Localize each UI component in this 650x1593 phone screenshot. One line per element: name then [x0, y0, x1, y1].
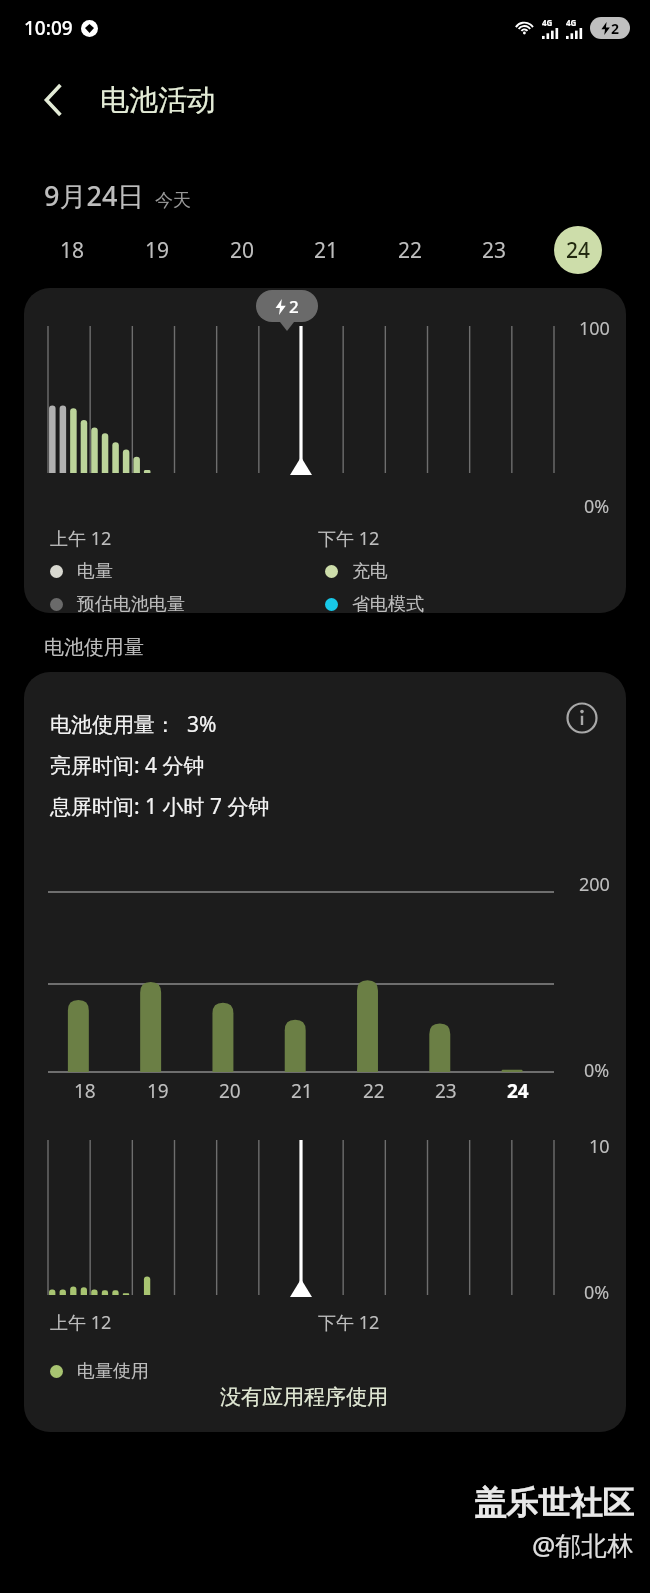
button[interactable]: 24: [536, 222, 620, 278]
staticText: 19: [147, 1078, 169, 1104]
staticText: 2: [611, 19, 620, 38]
staticText: 0%: [584, 1280, 610, 1305]
button[interactable]: 18: [30, 222, 115, 278]
staticText: 0%: [584, 1058, 610, 1083]
staticText: 22: [398, 236, 423, 265]
staticText: 2: [289, 295, 299, 318]
staticText: 电池使用量： 3%: [50, 710, 217, 739]
staticText: 21: [314, 236, 339, 265]
staticText: 4G: [566, 17, 577, 28]
button[interactable]: 19: [115, 222, 200, 278]
staticText: 24: [507, 1078, 529, 1104]
button[interactable]: 20: [200, 222, 284, 278]
button[interactable]: Info: [560, 696, 604, 740]
staticText: 没有应用程序使用: [220, 1384, 388, 1410]
staticText: 今天: [155, 189, 191, 212]
staticText: 充电: [352, 560, 388, 583]
staticText: 上午 12: [50, 1310, 112, 1335]
staticText: 省电模式: [352, 593, 424, 613]
button[interactable]: Back: [30, 76, 78, 124]
staticText: @郁北林: [532, 1527, 634, 1563]
staticText: 22: [363, 1078, 385, 1104]
staticText: 19: [145, 236, 170, 265]
staticText: 预估电池电量: [77, 593, 185, 613]
button[interactable]: 22: [368, 222, 452, 278]
staticText: 电量使用: [77, 1360, 149, 1383]
staticText: 电量: [77, 560, 113, 583]
staticText: 20: [230, 236, 255, 265]
staticText: 下午 12: [318, 1310, 380, 1335]
staticText: 20: [219, 1078, 241, 1104]
staticText: 电池活动: [100, 82, 216, 119]
staticText: 18: [74, 1078, 96, 1104]
button[interactable]: 21: [284, 222, 368, 278]
staticText: 0%: [584, 494, 610, 519]
staticText: 上午 12: [50, 526, 112, 551]
staticText: 200: [579, 872, 610, 897]
staticText: 9月24日: [44, 177, 145, 214]
staticText: 亮屏时间: 4 分钟: [50, 751, 205, 780]
button[interactable]: 23: [452, 222, 536, 278]
staticText: 23: [435, 1078, 457, 1104]
staticText: 18: [60, 236, 85, 265]
staticText: 盖乐世社区: [474, 1483, 634, 1523]
staticText: 10:09: [24, 15, 73, 41]
staticText: 100: [579, 316, 610, 341]
staticText: 电池使用量: [44, 635, 144, 660]
staticText: 10: [589, 1134, 610, 1159]
staticText: 下午 12: [318, 526, 380, 551]
staticText: 息屏时间: 1 小时 7 分钟: [50, 792, 270, 821]
button[interactable]: 100: [24, 288, 626, 613]
staticText: 21: [291, 1078, 313, 1104]
staticText: 4G: [542, 17, 553, 28]
staticText: 24: [566, 236, 591, 265]
staticText: 23: [482, 236, 507, 265]
